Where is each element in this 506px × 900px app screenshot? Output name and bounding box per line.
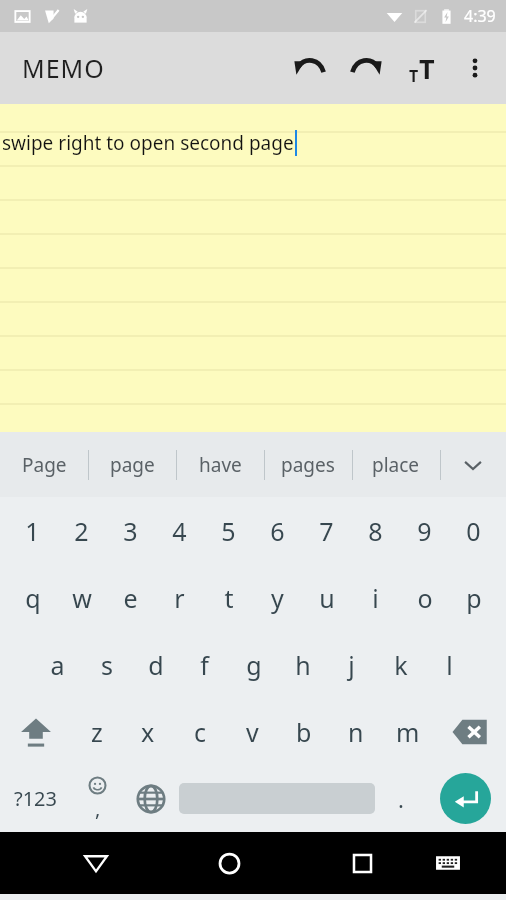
button[interactable]: c — [174, 698, 226, 765]
button[interactable]: Page — [0, 432, 88, 497]
button[interactable]: b — [278, 698, 330, 765]
staticText: p — [466, 581, 482, 615]
button[interactable]: 5 — [204, 497, 253, 564]
staticText: x — [141, 715, 155, 749]
staticText: q — [25, 581, 41, 615]
staticText: . — [398, 784, 404, 814]
staticText: 7 — [319, 514, 334, 548]
button[interactable]: h — [278, 631, 327, 698]
staticText: c — [194, 715, 207, 749]
button[interactable]: i — [351, 564, 400, 631]
staticText: b — [296, 715, 312, 749]
staticText: g — [246, 648, 262, 682]
button[interactable]: Space — [177, 765, 377, 832]
button[interactable]: o — [400, 564, 449, 631]
staticText: z — [91, 715, 103, 749]
staticText: 0 — [466, 514, 481, 548]
staticText: pages — [281, 452, 335, 478]
button[interactable]: Recents — [319, 832, 405, 894]
staticText: n — [348, 715, 364, 749]
button[interactable]: 9 — [400, 497, 449, 564]
button[interactable]: a — [32, 631, 82, 698]
staticText: Page — [22, 452, 67, 478]
button[interactable]: r — [155, 564, 204, 631]
button[interactable]: 6 — [253, 497, 302, 564]
button[interactable]: y — [253, 564, 302, 631]
staticText: d — [148, 648, 164, 682]
staticText: j — [348, 648, 355, 682]
staticText: 2 — [74, 514, 89, 548]
staticText: ?123 — [14, 785, 57, 812]
button[interactable]: ?123 — [0, 765, 71, 832]
staticText: T — [419, 50, 435, 87]
button[interactable]: t — [204, 564, 253, 631]
button[interactable]: f — [180, 631, 229, 698]
button[interactable]: More suggestions — [440, 432, 506, 497]
button[interactable]: k — [376, 631, 425, 698]
staticText: u — [319, 581, 335, 615]
staticText: 9 — [417, 514, 432, 548]
staticText: r — [174, 581, 185, 615]
button[interactable]: Text size — [394, 40, 450, 96]
button[interactable]: Emoji — [71, 765, 124, 832]
button[interactable]: Back — [53, 832, 139, 894]
button[interactable]: 0 — [449, 497, 498, 564]
staticText: w — [72, 581, 92, 615]
button[interactable]: 3 — [106, 497, 155, 564]
button[interactable]: Redo — [338, 40, 394, 96]
button[interactable]: 1 — [8, 497, 57, 564]
button[interactable]: have — [176, 432, 264, 497]
button[interactable]: 4 — [155, 497, 204, 564]
button[interactable]: d — [131, 631, 180, 698]
button[interactable]: e — [106, 564, 155, 631]
button[interactable]: Change language — [124, 765, 177, 832]
staticText: o — [417, 581, 433, 615]
button[interactable]: Switch keyboard — [405, 832, 491, 894]
button[interactable]: . — [377, 765, 425, 832]
button[interactable]: s — [82, 631, 131, 698]
button[interactable]: p — [449, 564, 498, 631]
staticText: m — [396, 715, 420, 749]
button[interactable]: m — [382, 698, 434, 765]
staticText: h — [295, 648, 311, 682]
button[interactable]: x — [122, 698, 174, 765]
staticText: e — [123, 581, 138, 615]
button[interactable]: q — [8, 564, 57, 631]
staticText: 5 — [221, 514, 236, 548]
button[interactable]: z — [71, 698, 122, 765]
button[interactable]: Enter — [425, 765, 506, 832]
staticText: swipe right to open second page — [2, 130, 294, 156]
button[interactable]: Home — [186, 832, 272, 894]
button[interactable]: j — [327, 631, 376, 698]
button[interactable]: g — [229, 631, 278, 698]
button[interactable]: pages — [264, 432, 352, 497]
button[interactable]: n — [330, 698, 382, 765]
staticText: T — [409, 65, 419, 87]
staticText: , — [95, 795, 101, 822]
staticText: y — [271, 581, 284, 615]
button[interactable]: More options — [450, 43, 500, 93]
button[interactable]: Backspace — [434, 698, 506, 765]
button[interactable]: 8 — [351, 497, 400, 564]
staticText: MEMO — [22, 51, 105, 85]
staticText: i — [372, 581, 379, 615]
button[interactable]: place — [352, 432, 440, 497]
staticText: l — [446, 648, 453, 682]
button[interactable]: 7 — [302, 497, 351, 564]
staticText: a — [50, 648, 65, 682]
button[interactable]: page — [88, 432, 176, 497]
staticText: s — [101, 648, 113, 682]
button[interactable]: w — [57, 564, 106, 631]
staticText: 8 — [368, 514, 383, 548]
staticText: 1 — [25, 514, 40, 548]
button[interactable]: l — [425, 631, 474, 698]
button[interactable]: 2 — [57, 497, 106, 564]
staticText: v — [246, 715, 259, 749]
staticText: page — [110, 452, 155, 478]
button[interactable]: u — [302, 564, 351, 631]
staticText: t — [224, 581, 234, 615]
button[interactable]: Undo — [282, 40, 338, 96]
button[interactable]: Shift — [0, 698, 71, 765]
staticText: 3 — [123, 514, 138, 548]
button[interactable]: v — [226, 698, 278, 765]
